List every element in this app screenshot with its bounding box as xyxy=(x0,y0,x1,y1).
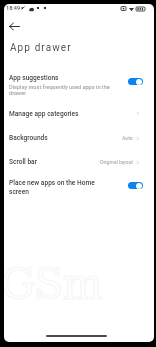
staticText: Display most frequently used apps in the… xyxy=(9,84,110,96)
staticText: Backgrounds xyxy=(9,134,48,142)
button[interactable]: Scroll bar xyxy=(4,150,154,174)
button[interactable]: App suggestions xyxy=(4,68,154,101)
staticText: 18:49 xyxy=(6,5,21,12)
button[interactable]: Back xyxy=(6,18,22,34)
staticText: Manage app categories xyxy=(9,110,79,118)
staticText: Scroll bar xyxy=(9,158,38,166)
staticText: Original layout xyxy=(100,159,133,165)
staticText: App drawer xyxy=(10,42,72,54)
staticText: Place new apps on the Home screen xyxy=(9,179,95,195)
staticText: App suggestions xyxy=(9,74,59,82)
button[interactable]: Manage app categories xyxy=(4,101,154,126)
button[interactable]: Backgrounds xyxy=(4,126,154,150)
staticText: Auto xyxy=(122,135,133,141)
button[interactable]: Place new apps on the Home screen xyxy=(4,174,154,200)
